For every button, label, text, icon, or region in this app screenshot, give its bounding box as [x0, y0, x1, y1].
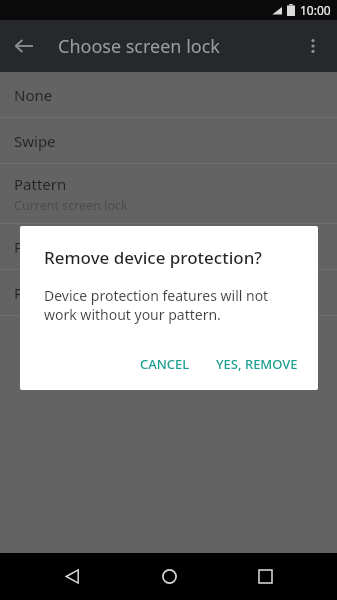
button[interactable]: Swipe [0, 118, 337, 163]
button[interactable]: Pattern [0, 164, 337, 223]
button[interactable]: More options [289, 22, 337, 70]
staticText: PIN [14, 237, 40, 257]
button[interactable]: YES, REMOVE [206, 347, 308, 381]
staticText: CANCEL [140, 355, 190, 373]
staticText: Password [14, 283, 82, 303]
staticText: None [14, 85, 53, 105]
button[interactable]: Password [0, 270, 337, 315]
staticText: Current screen lock [14, 197, 128, 214]
button[interactable]: Home [145, 553, 193, 600]
staticText: Remove device protection? [44, 246, 262, 269]
button[interactable]: Navigate up [0, 22, 48, 70]
staticText: Swipe [14, 131, 56, 151]
staticText: Choose screen lock [58, 34, 220, 59]
staticText: 10:00 [300, 2, 331, 18]
button[interactable]: Back [48, 553, 96, 600]
button[interactable]: Recent apps [241, 553, 289, 600]
button[interactable]: PIN [0, 224, 337, 269]
staticText: Pattern [14, 174, 67, 194]
staticText: YES, REMOVE [216, 355, 298, 373]
button[interactable]: None [0, 72, 337, 117]
staticText: Device protection features will not work… [44, 286, 296, 324]
button[interactable]: CANCEL [130, 347, 200, 381]
